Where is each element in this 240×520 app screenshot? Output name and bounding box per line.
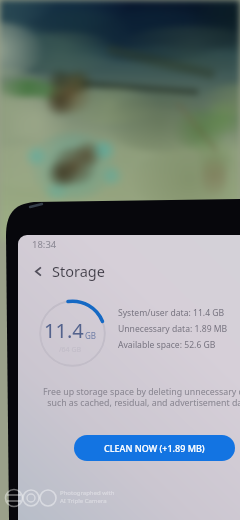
staticText: GB bbox=[85, 330, 97, 341]
staticText: 11.4 bbox=[44, 317, 84, 344]
staticText: System/user data: 11.4 GB bbox=[118, 307, 225, 319]
staticText: Storage bbox=[52, 261, 105, 281]
staticText: /64 GB bbox=[59, 345, 82, 355]
staticText: Free up storage space by deleting unnece… bbox=[30, 386, 240, 409]
staticText: Unnecessary data: 1.89 MB bbox=[118, 323, 228, 335]
staticText: 18:34 bbox=[32, 238, 57, 251]
other: Back bbox=[29, 262, 47, 280]
staticText: Photographed with AI Triple Camera bbox=[60, 489, 115, 505]
staticText: CLEAN NOW (+1.89 MB) bbox=[104, 442, 205, 454]
button[interactable]: Back bbox=[29, 260, 105, 282]
button[interactable]: CLEAN NOW (+1.89 MB) bbox=[74, 435, 235, 461]
staticText: Available space: 52.6 GB bbox=[118, 339, 216, 351]
